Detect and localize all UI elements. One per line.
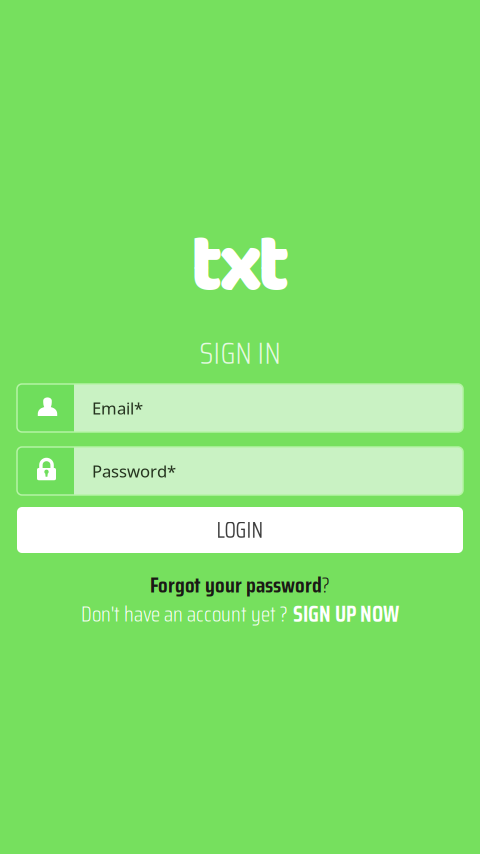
staticText: Password*: [92, 460, 176, 482]
staticText: txt: [190, 200, 290, 332]
button[interactable]: Forgot your password?: [150, 568, 330, 602]
button[interactable]: Password*: [17, 447, 463, 495]
staticText: Email*: [92, 397, 143, 419]
button[interactable]: LOGIN: [17, 507, 463, 553]
button[interactable]: SIGN UP NOW: [293, 597, 399, 631]
staticText: Don't have an account yet ?: [81, 597, 288, 631]
staticText: SIGN IN: [199, 329, 280, 377]
staticText: Forgot your password?: [150, 568, 330, 602]
staticText: SIGN UP NOW: [293, 597, 399, 631]
button[interactable]: Email*: [17, 384, 463, 432]
staticText: LOGIN: [216, 513, 263, 547]
